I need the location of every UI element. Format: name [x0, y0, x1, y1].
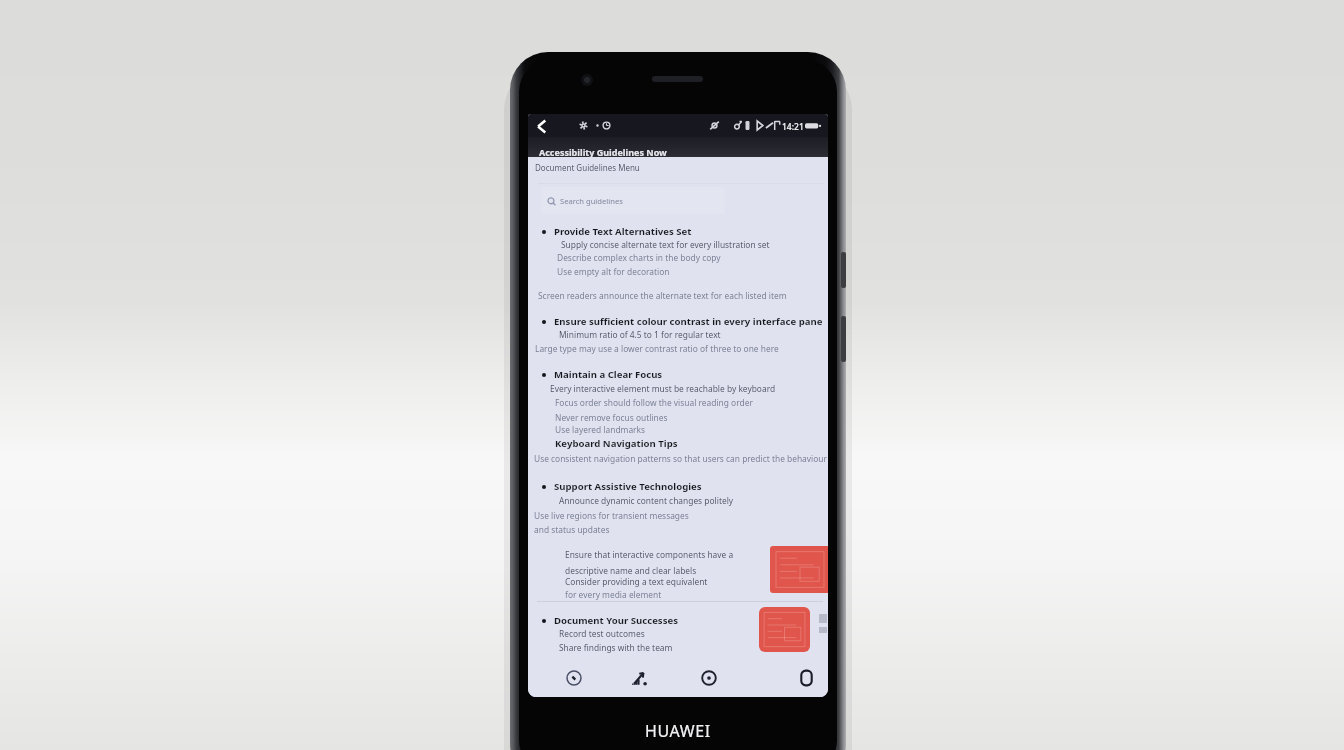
staticText: Consider providing a text equivalent	[565, 576, 708, 587]
staticText: Search guidelines	[560, 196, 623, 206]
staticText: and status updates	[534, 524, 610, 535]
staticText: Announce dynamic content changes politel…	[559, 495, 734, 506]
button[interactable]: Home	[792, 664, 820, 692]
staticText: for every media element	[565, 589, 662, 600]
staticText: Ensure that interactive components have …	[565, 549, 734, 560]
staticText: Record test outcomes	[559, 628, 645, 639]
staticText: Share findings with the team	[559, 642, 673, 653]
staticText: 14:21	[782, 121, 804, 133]
staticText: Ensure sufficient colour contrast in eve…	[554, 315, 823, 328]
button[interactable]: Recent	[560, 664, 588, 692]
button[interactable]: Trends	[625, 664, 653, 692]
staticText: Support Assistive Technologies	[554, 480, 702, 493]
staticText: Use live regions for transient messages	[534, 510, 689, 521]
staticText: Document Guidelines Menu	[535, 162, 640, 173]
staticText: HUAWEI	[645, 720, 711, 742]
staticText: Never remove focus outlines	[555, 412, 668, 423]
staticText: Accessibility Guidelines Now	[539, 146, 667, 158]
staticText: Maintain a Clear Focus	[554, 368, 663, 381]
staticText: Use layered landmarks	[555, 424, 646, 435]
staticText: Document Your Successes	[554, 614, 679, 627]
button[interactable]: Back	[532, 117, 550, 135]
staticText: Large type may use a lower contrast rati…	[535, 343, 779, 354]
staticText: Minimum ratio of 4.5 to 1 for regular te…	[559, 329, 721, 340]
staticText: Screen readers announce the alternate te…	[538, 290, 787, 301]
staticText: Use consistent navigation patterns so th…	[534, 453, 827, 464]
button[interactable]: Search guidelines	[541, 187, 725, 214]
staticText: Supply concise alternate text for every …	[561, 239, 770, 250]
button[interactable]: Add	[695, 664, 723, 692]
staticText: Keyboard Navigation Tips	[555, 437, 678, 450]
staticText: descriptive name and clear labels	[565, 565, 697, 576]
staticText: Provide Text Alternatives Set	[554, 225, 692, 238]
staticText: Use empty alt for decoration	[557, 266, 670, 277]
staticText: Describe complex charts in the body copy	[557, 252, 721, 263]
staticText: Every interactive element must be reacha…	[550, 383, 776, 394]
button[interactable]: Report thumbnail	[759, 607, 810, 652]
staticText: Focus order should follow the visual rea…	[555, 397, 753, 408]
button[interactable]: Guideline illustration	[770, 546, 828, 593]
